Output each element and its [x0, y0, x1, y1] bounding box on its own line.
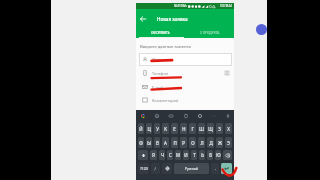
button[interactable]: Д	[207, 137, 214, 148]
staticText: 2 ПРОДУКТА	[200, 31, 220, 35]
staticText: Э	[227, 140, 230, 146]
button[interactable]: Ш	[198, 123, 205, 134]
staticText: 56:01 КБ/c	[174, 4, 187, 8]
button[interactable]: Б	[207, 150, 213, 160]
staticText: С	[169, 152, 172, 158]
button[interactable]: Х	[225, 123, 232, 134]
staticText: У	[156, 126, 159, 132]
button[interactable]: Settings	[196, 112, 203, 119]
staticText: Ф	[139, 140, 143, 146]
staticText: Ь	[201, 152, 204, 158]
button[interactable]: ?123	[138, 163, 149, 174]
button[interactable]: П	[171, 137, 178, 148]
staticText: Русский	[185, 166, 198, 171]
button[interactable]: Backspace	[223, 150, 232, 160]
staticText: К	[164, 126, 167, 132]
button[interactable]: Enter	[221, 163, 232, 174]
staticText: Имя	[152, 57, 161, 62]
button[interactable]: Телефон	[139, 66, 232, 80]
button[interactable]: Н	[180, 123, 187, 134]
staticText: М	[176, 152, 180, 158]
button[interactable]: Ь	[199, 150, 205, 160]
button[interactable]: В	[154, 137, 160, 148]
staticText: E-mail	[152, 85, 164, 90]
staticText: Л	[200, 140, 204, 146]
button[interactable]: Ф	[138, 137, 144, 148]
staticText: Телефон	[152, 71, 169, 76]
button[interactable]: Ю	[215, 150, 221, 160]
button[interactable]: Voice input	[224, 112, 231, 119]
staticText: Новая заявка	[157, 16, 188, 22]
button[interactable]: С	[167, 150, 173, 160]
staticText: Б	[209, 152, 212, 158]
button[interactable]: О	[189, 137, 196, 148]
staticText: Т	[193, 152, 196, 158]
button[interactable]: More options	[210, 112, 217, 119]
button[interactable]: Щ	[207, 123, 214, 134]
staticText: Ы	[147, 140, 151, 146]
button[interactable]: GIF	[167, 112, 174, 119]
button[interactable]: Back	[137, 13, 149, 25]
button[interactable]: Ж	[216, 137, 223, 148]
staticText: Ш	[199, 126, 204, 132]
staticText: ?123	[140, 166, 148, 171]
button[interactable]: Ч	[159, 150, 165, 160]
button[interactable]: З	[216, 123, 223, 134]
staticText: В	[156, 140, 159, 146]
button[interactable]: E-mail	[139, 80, 232, 94]
button[interactable]: Г	[189, 123, 196, 134]
button[interactable]: 2 ПРОДУКТА	[185, 28, 234, 38]
button[interactable]: Л	[198, 137, 205, 148]
button[interactable]: Emoji	[153, 112, 160, 119]
staticText: Ч	[161, 152, 164, 158]
button[interactable]: Э	[225, 137, 232, 148]
button[interactable]: Й	[138, 123, 144, 134]
staticText: Я	[152, 152, 155, 158]
button[interactable]: Emoji	[151, 163, 160, 174]
staticText: Й	[139, 126, 143, 132]
staticText: И	[184, 152, 188, 158]
button[interactable]: Я	[150, 150, 157, 160]
button[interactable]: Google search	[139, 112, 146, 119]
button[interactable]: ОФОРМИТЬ	[136, 28, 185, 38]
button[interactable]: Е	[171, 123, 178, 134]
button[interactable]: М	[175, 150, 181, 160]
staticText: Комментарий	[152, 98, 179, 103]
staticText: П	[173, 140, 177, 146]
button[interactable]: А	[162, 137, 169, 148]
button[interactable]: К	[162, 123, 169, 134]
staticText: Введите данные клиента	[140, 44, 191, 50]
staticText: Х	[227, 126, 230, 132]
staticText: Ц	[147, 126, 151, 132]
staticText: О	[191, 140, 195, 146]
button[interactable]: У	[154, 123, 160, 134]
button[interactable]: И	[183, 150, 189, 160]
button[interactable]: Русский	[174, 163, 209, 174]
staticText: Е	[173, 126, 176, 132]
staticText: З	[218, 126, 221, 132]
staticText: ОФОРМИТЬ	[151, 31, 170, 35]
staticText: Д	[209, 140, 213, 146]
button[interactable]: Switch language	[162, 163, 172, 174]
button[interactable]: Clipboard	[182, 112, 189, 119]
staticText: Г	[191, 126, 194, 132]
staticText: Ж	[218, 140, 222, 146]
button[interactable]: Р	[180, 137, 187, 148]
button[interactable]: Т	[191, 150, 197, 160]
staticText: 100 18:24	[220, 4, 232, 8]
button[interactable]: Ы	[146, 137, 152, 148]
staticText: Н	[182, 126, 186, 132]
staticText: А	[164, 140, 167, 146]
button[interactable]: Shift	[138, 150, 148, 160]
staticText: .	[215, 166, 216, 171]
staticText: Щ	[208, 126, 213, 132]
button[interactable]: Имя	[139, 53, 232, 66]
button[interactable]: Ц	[146, 123, 152, 134]
button[interactable]: .	[211, 163, 219, 174]
staticText: Р	[182, 140, 185, 146]
staticText: Ю	[216, 152, 221, 158]
button[interactable]: Комментарий	[139, 93, 232, 107]
